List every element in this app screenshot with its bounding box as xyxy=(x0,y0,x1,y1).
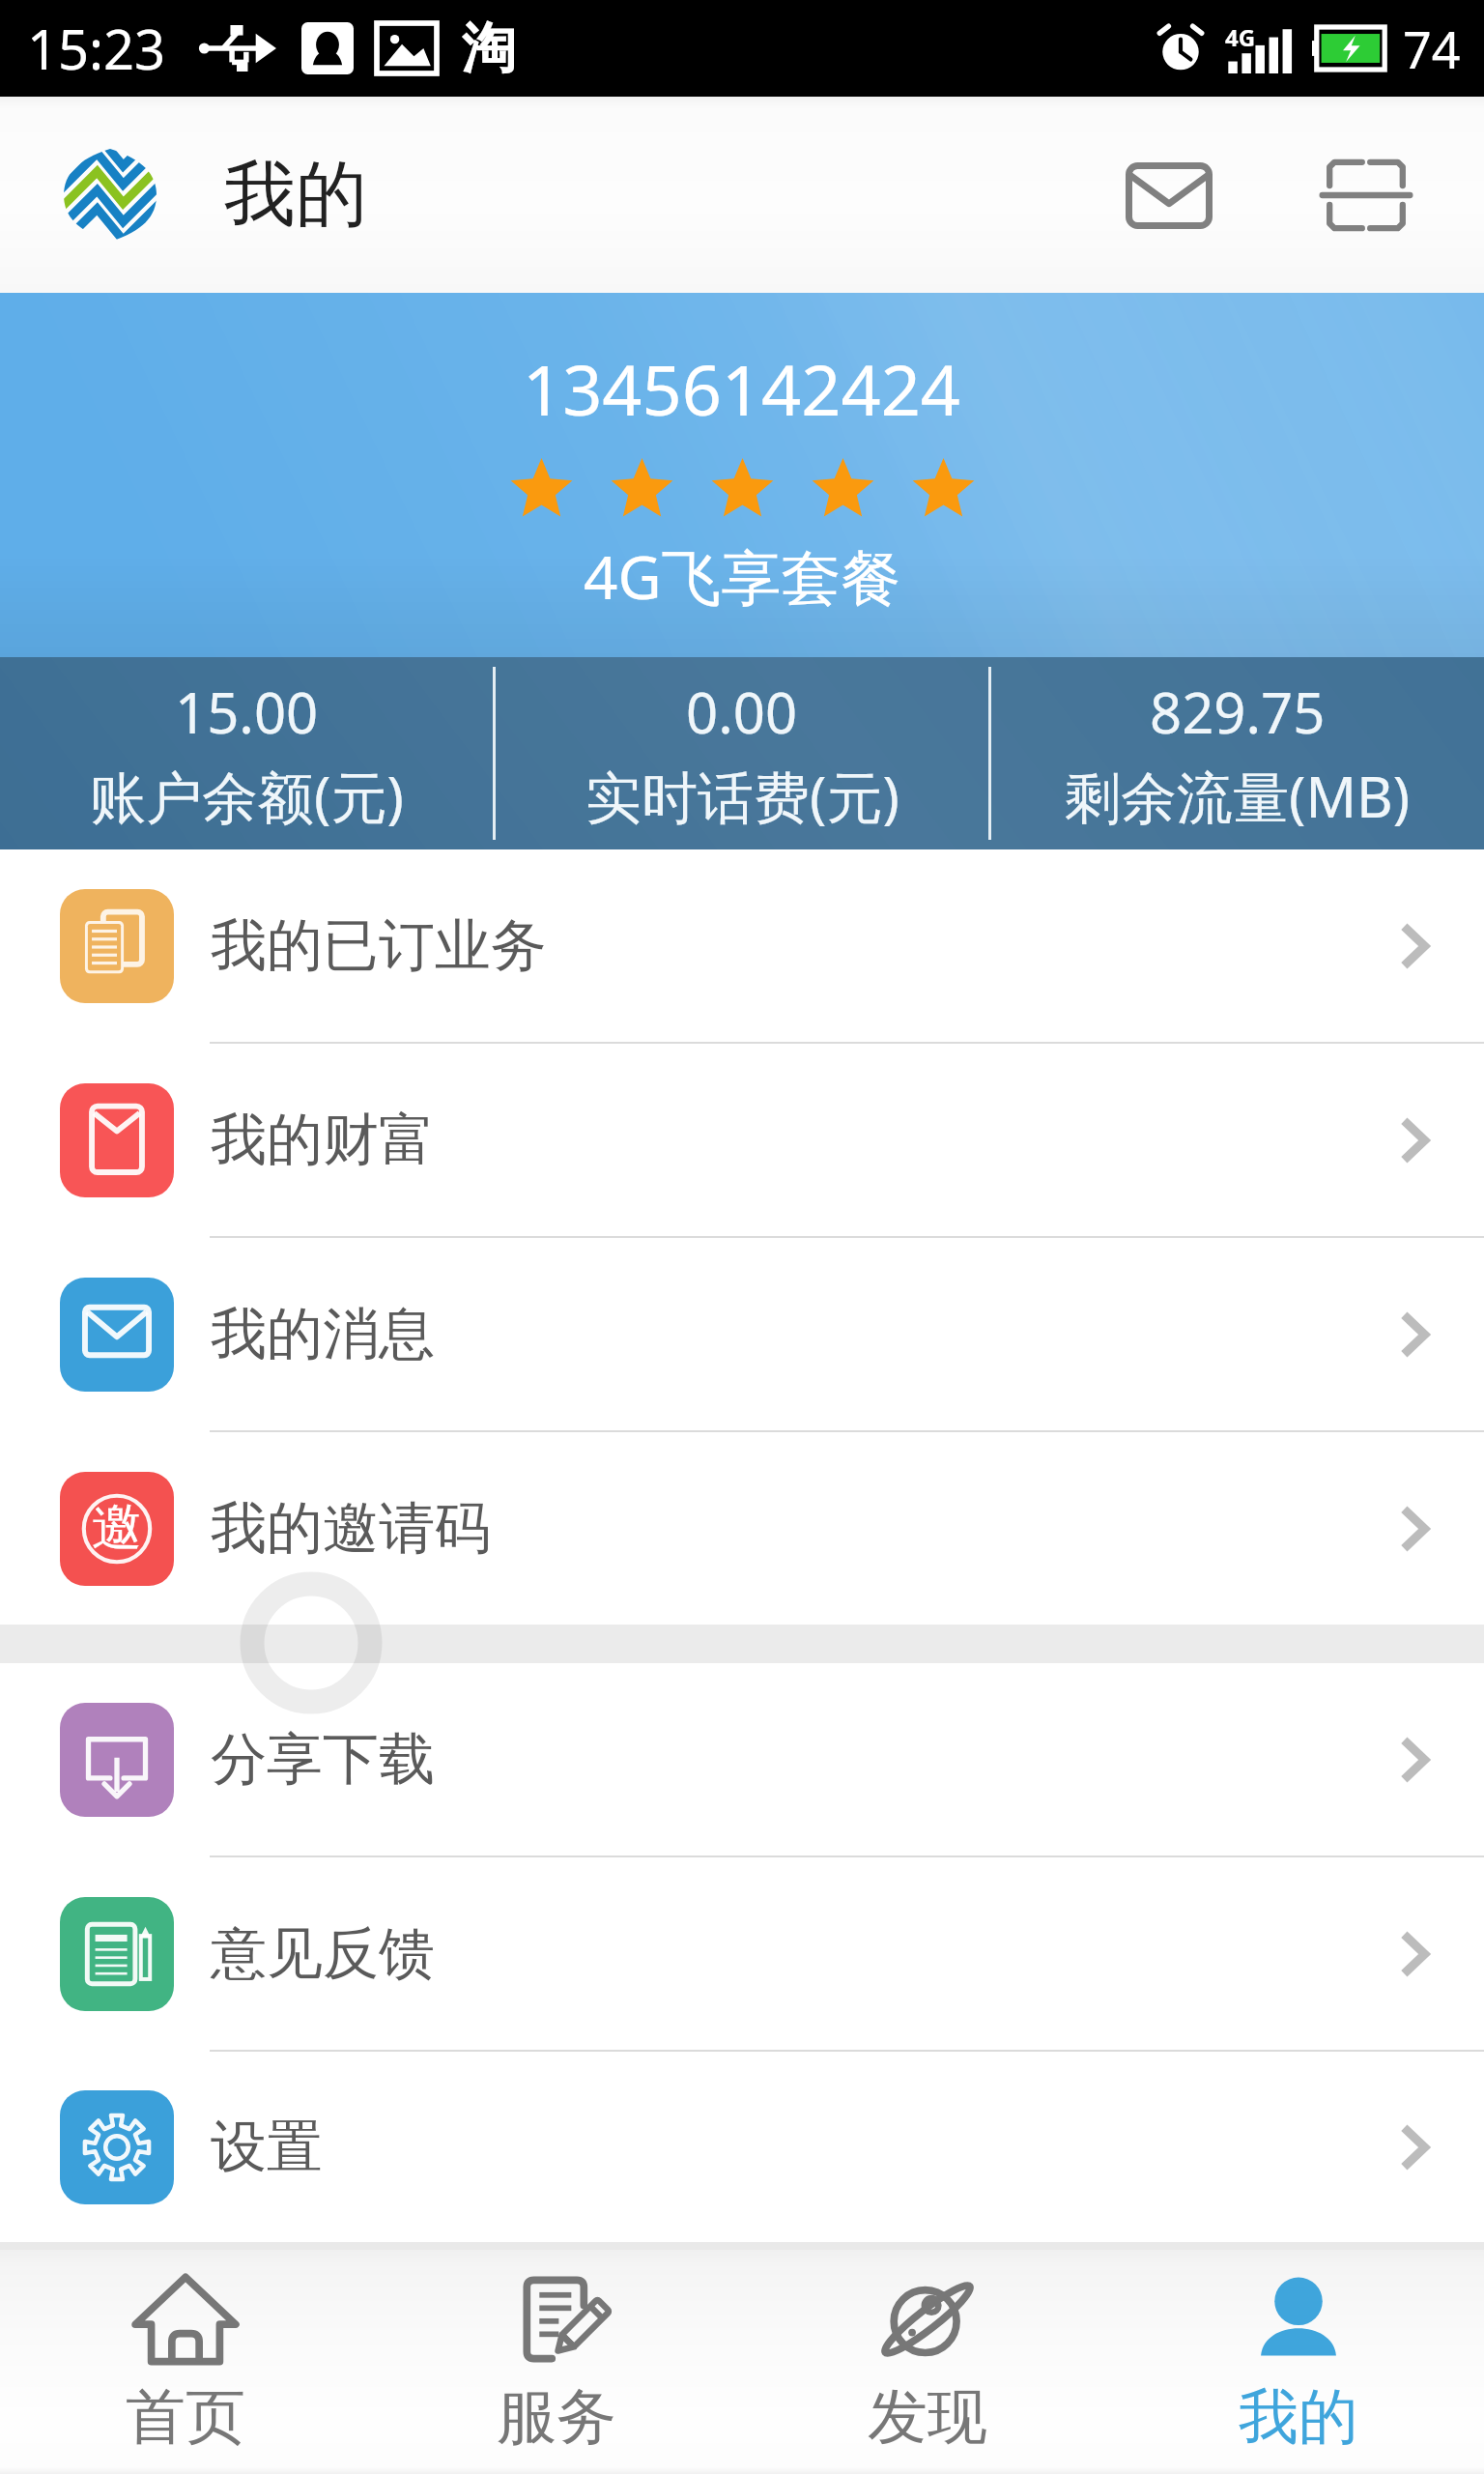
staticText: 意见反馈 xyxy=(211,1918,435,1989)
button[interactable]: 829.75 xyxy=(991,657,1484,849)
staticText: 0.00 xyxy=(686,674,798,750)
staticText: 我的已订业务 xyxy=(211,910,547,981)
button[interactable]: 服务 xyxy=(371,2250,742,2474)
staticText: 15.00 xyxy=(175,674,319,750)
button[interactable]: 我的财富 xyxy=(0,1044,1484,1236)
staticText: 829.75 xyxy=(1150,674,1326,750)
button[interactable]: Messages xyxy=(1111,137,1227,253)
staticText: 淘 xyxy=(462,14,516,83)
button[interactable]: 意见反馈 xyxy=(0,1857,1484,2050)
staticText: 4G飞享套餐 xyxy=(584,535,901,618)
staticText: 我的 xyxy=(1239,2379,1358,2455)
staticText: 4G xyxy=(1225,21,1256,53)
button[interactable]: 0.00 xyxy=(496,657,988,849)
staticText: 15:23 xyxy=(27,12,166,85)
button[interactable]: 发现 xyxy=(742,2250,1113,2474)
button[interactable]: 我的 xyxy=(1113,2250,1484,2474)
staticText: 剩余流量(MB) xyxy=(1065,758,1411,834)
button[interactable]: 邀 xyxy=(0,1432,1484,1625)
staticText: 13456142424 xyxy=(523,341,961,436)
staticText: 74 xyxy=(1403,14,1461,83)
staticText: 账户余额(元) xyxy=(90,758,404,834)
staticText: 邀 xyxy=(92,1496,142,1560)
button[interactable]: 首页 xyxy=(0,2250,371,2474)
button[interactable]: 设置 xyxy=(0,2052,1484,2242)
staticText: 分享下载 xyxy=(211,1724,435,1795)
staticText: 我的 xyxy=(224,150,367,240)
button[interactable]: 我的消息 xyxy=(0,1238,1484,1430)
staticText: 服务 xyxy=(497,2379,616,2455)
staticText: 我的邀请码 xyxy=(211,1493,491,1564)
staticText: 设置 xyxy=(211,2112,323,2182)
button[interactable]: 分享下载 xyxy=(0,1663,1484,1855)
button[interactable]: Scan xyxy=(1308,137,1424,253)
button[interactable]: 15.00 xyxy=(0,657,493,849)
staticText: 首页 xyxy=(126,2379,245,2455)
staticText: 我的消息 xyxy=(211,1299,435,1369)
button[interactable]: 我的已订业务 xyxy=(0,849,1484,1042)
staticText: 实时话费(元) xyxy=(585,758,899,834)
staticText: 我的财富 xyxy=(211,1105,435,1175)
staticText: 发现 xyxy=(868,2379,987,2455)
